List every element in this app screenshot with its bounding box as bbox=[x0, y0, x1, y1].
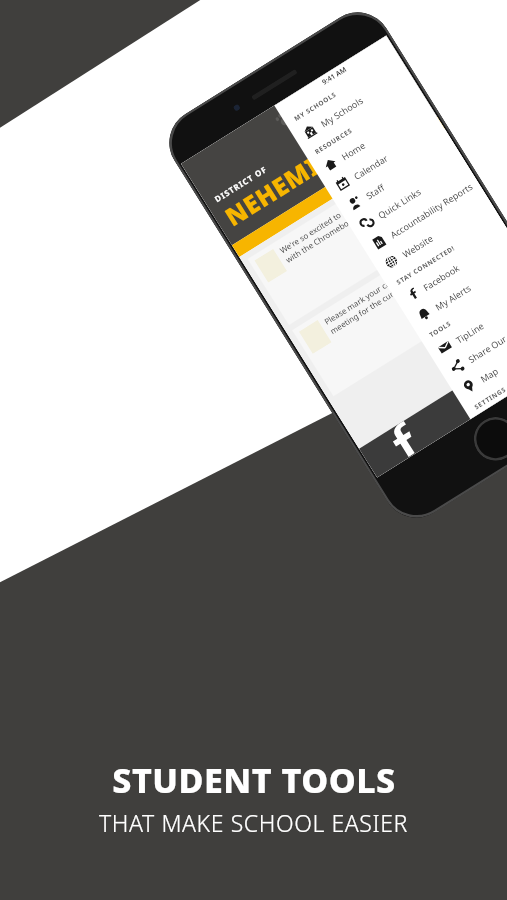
button[interactable]: Accountability Reports bbox=[359, 171, 483, 261]
staticText: My Schools bbox=[318, 94, 365, 129]
button[interactable]: My Alerts bbox=[404, 243, 507, 333]
button[interactable]: TipLine bbox=[425, 276, 507, 366]
staticText: THAT MAKE SCHOOL EASIER bbox=[99, 807, 408, 838]
button[interactable]: Staff bbox=[335, 132, 459, 222]
staticText: TOOLS bbox=[427, 318, 453, 339]
button[interactable]: Facebook bbox=[379, 423, 420, 464]
button[interactable]: Quick Links bbox=[347, 152, 471, 241]
staticText: My Alerts bbox=[433, 281, 473, 313]
button[interactable]: Facebook bbox=[392, 224, 507, 313]
staticText: General bbox=[452, 194, 476, 213]
button[interactable]: Calendar bbox=[323, 113, 447, 202]
button[interactable]: Home bbox=[310, 93, 434, 183]
button[interactable]: Map bbox=[449, 315, 507, 405]
staticText: Home bbox=[339, 138, 367, 162]
button[interactable]: We're so excited to love all the student… bbox=[248, 137, 484, 325]
staticText: 9:41 AM bbox=[320, 65, 348, 88]
staticText: STAY CONNECTED! bbox=[395, 243, 457, 287]
button[interactable]: My Schools bbox=[290, 60, 414, 150]
staticText: We're so excited to love all the student… bbox=[277, 144, 453, 265]
staticText: Calendar bbox=[351, 152, 390, 182]
button[interactable]: Share Our App bbox=[437, 296, 507, 385]
staticText: SETTINGS bbox=[472, 385, 507, 411]
staticText: Share Our App bbox=[466, 322, 507, 365]
button[interactable]: Please mark your calendars for this mont… bbox=[292, 208, 507, 396]
staticText: Map bbox=[478, 364, 500, 385]
staticText: Website bbox=[400, 232, 435, 260]
staticText: NEHEMIAH bbox=[218, 128, 358, 233]
staticText: STUDENT TOOLS bbox=[112, 757, 396, 803]
staticText: Quick Links bbox=[376, 185, 423, 221]
staticText: MY SCHOOLS bbox=[292, 89, 339, 123]
button[interactable]: Home button bbox=[465, 408, 507, 469]
staticText: DISTRICT OF bbox=[212, 163, 269, 204]
button[interactable]: Website bbox=[371, 191, 495, 280]
staticText: TipLine bbox=[453, 319, 486, 346]
staticText: Facebook bbox=[421, 261, 462, 293]
staticText: Accountability Reports bbox=[388, 180, 475, 240]
staticText: RESOURCES bbox=[313, 126, 354, 156]
staticText: Please mark your calendars for this mont… bbox=[322, 215, 497, 336]
staticText: Staff bbox=[363, 181, 387, 201]
